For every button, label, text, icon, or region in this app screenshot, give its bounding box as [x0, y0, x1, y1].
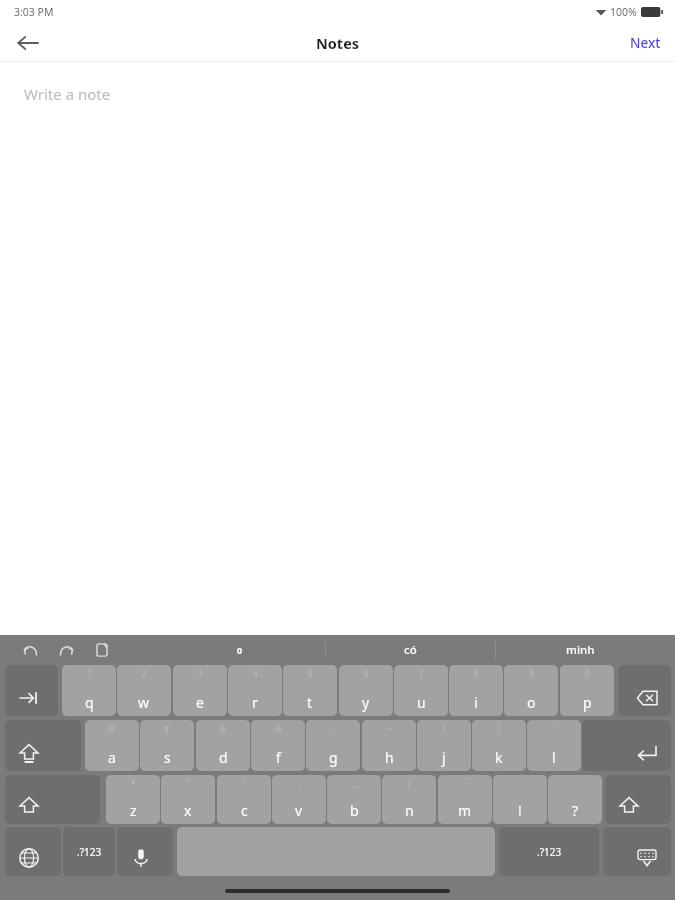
staticText: c	[241, 801, 248, 820]
button[interactable]: "	[161, 775, 215, 824]
staticText: '	[243, 778, 245, 789]
button[interactable]: ’	[527, 720, 581, 771]
staticText: mình	[566, 642, 595, 658]
staticText: ;	[353, 778, 356, 789]
staticText: -	[332, 723, 335, 734]
button[interactable]: /	[382, 775, 436, 824]
button[interactable]: Undo	[18, 638, 42, 662]
staticText: o	[527, 693, 536, 712]
button[interactable]: 2	[117, 665, 171, 716]
staticText: l	[552, 748, 556, 767]
button[interactable]: mic	[117, 827, 173, 876]
button[interactable]: Clipboard	[90, 638, 114, 662]
button[interactable]: 7	[394, 665, 448, 716]
staticText: i	[474, 693, 478, 712]
button[interactable]: 6	[339, 665, 393, 716]
staticText: 5	[308, 668, 313, 679]
button[interactable]: 0	[155, 635, 325, 665]
staticText: Write a note	[24, 84, 111, 104]
button[interactable]: 0	[560, 665, 614, 716]
staticText: 3	[198, 668, 203, 679]
staticText: h	[385, 748, 394, 767]
button[interactable]: del	[618, 665, 671, 716]
button[interactable]: shift	[605, 775, 671, 824]
button[interactable]: shiftlock	[5, 720, 81, 771]
staticText: #	[164, 723, 170, 734]
button[interactable]: 5	[283, 665, 337, 716]
button[interactable]: ~	[438, 775, 492, 824]
staticText: !	[518, 801, 522, 820]
button[interactable]: #	[140, 720, 194, 771]
staticText: k	[495, 748, 503, 767]
staticText: n	[405, 801, 414, 820]
button[interactable]: ;	[327, 775, 381, 824]
button[interactable]: %	[251, 720, 305, 771]
button[interactable]: :	[272, 775, 326, 824]
staticText: w	[138, 693, 150, 712]
button[interactable]: &	[196, 720, 250, 771]
staticText: .?123	[77, 845, 102, 859]
staticText: *	[131, 778, 136, 789]
staticText: %	[275, 723, 282, 734]
staticText: ?	[572, 801, 579, 820]
staticText: 4	[253, 668, 258, 679]
staticText: a	[108, 748, 116, 767]
staticText: x	[184, 801, 192, 820]
staticText: Notes	[316, 33, 360, 53]
staticText: q	[85, 693, 94, 712]
button[interactable]: 9	[504, 665, 558, 716]
staticText: (	[443, 723, 446, 734]
button[interactable]: tab	[5, 665, 58, 716]
staticText: u	[417, 693, 426, 712]
button[interactable]: 4	[228, 665, 282, 716]
button[interactable]: .?123	[63, 827, 115, 876]
staticText: )	[498, 723, 501, 734]
button[interactable]: )	[472, 720, 526, 771]
staticText: +	[387, 723, 392, 734]
staticText: m	[458, 801, 472, 820]
staticText: .?123	[537, 845, 562, 859]
button[interactable]: @	[85, 720, 139, 771]
button[interactable]: *	[106, 775, 160, 824]
staticText: @	[108, 723, 116, 734]
button[interactable]: Next	[616, 26, 675, 60]
staticText: 6	[364, 668, 369, 679]
staticText: e	[196, 693, 204, 712]
button[interactable]: có	[326, 635, 495, 665]
staticText: 9	[529, 668, 534, 679]
button[interactable]: enter	[582, 720, 671, 771]
staticText: r	[252, 693, 258, 712]
button[interactable]: Back	[6, 24, 50, 61]
staticText: ’	[553, 723, 555, 734]
button[interactable]: -	[306, 720, 360, 771]
button[interactable]: (	[417, 720, 471, 771]
button[interactable]: 3	[173, 665, 227, 716]
staticText: p	[583, 693, 592, 712]
staticText: 100%	[610, 5, 637, 19]
staticText: g	[329, 748, 338, 767]
button[interactable]: 1	[62, 665, 116, 716]
staticText: 7	[419, 668, 424, 679]
staticText: 3:03 PM	[14, 5, 54, 19]
button[interactable]: .	[548, 775, 602, 824]
button[interactable]: globe	[5, 827, 61, 876]
staticText: y	[362, 693, 370, 712]
button[interactable]: 8	[449, 665, 503, 716]
staticText: ~	[463, 778, 468, 789]
staticText: Next	[630, 34, 661, 52]
staticText: f	[276, 748, 281, 767]
button[interactable]: mình	[496, 635, 665, 665]
button[interactable]: shift	[5, 775, 100, 824]
button[interactable]: Redo	[54, 638, 78, 662]
button[interactable]: hide	[603, 827, 671, 876]
staticText: d	[219, 748, 228, 767]
button[interactable]: .?123	[499, 827, 599, 876]
staticText: ,	[519, 778, 522, 789]
staticText: &	[220, 723, 226, 734]
staticText: 8	[474, 668, 479, 679]
button[interactable]: ,	[493, 775, 547, 824]
button[interactable]: +	[362, 720, 416, 771]
staticText: v	[295, 801, 303, 820]
button[interactable]: '	[217, 775, 271, 824]
